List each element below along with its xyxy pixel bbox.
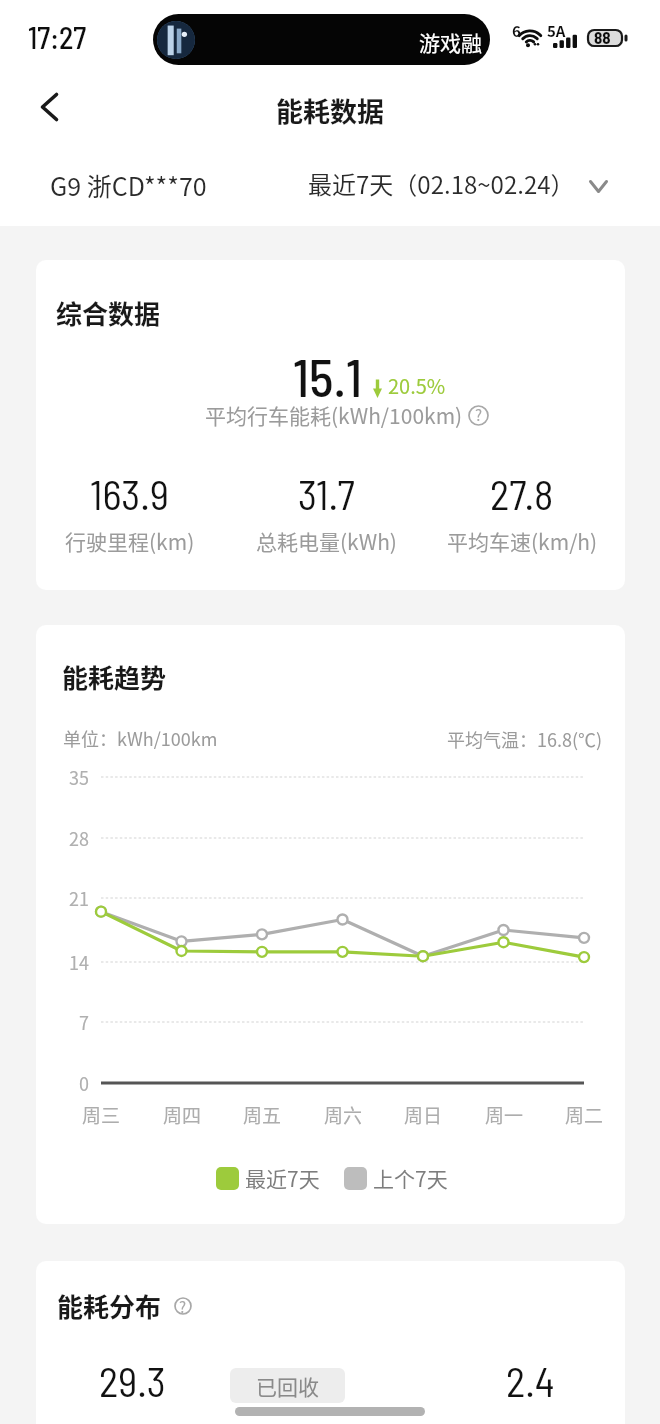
staticText: 27.8	[490, 469, 554, 518]
staticText: 游戏融	[419, 27, 482, 57]
staticText: 21	[69, 885, 89, 911]
staticText: 单位：kWh/100km	[63, 725, 218, 751]
staticText: 35	[69, 764, 89, 790]
button[interactable]: G9 浙CD***70	[50, 167, 207, 203]
staticText: 周二	[565, 1101, 604, 1129]
staticText: 5A	[547, 20, 566, 42]
staticText: 6	[512, 20, 521, 42]
staticText: 28	[69, 825, 89, 851]
staticText: 31.7	[298, 469, 355, 518]
staticText: 上个7天	[373, 1163, 448, 1193]
staticText: 20.5%	[388, 371, 446, 400]
staticText: 能耗数据	[276, 91, 384, 130]
staticText: 能耗趋势	[62, 658, 167, 696]
staticText: 平均气温：16.8(℃)	[447, 726, 603, 752]
staticText: 最近7天（02.18~02.24）	[308, 166, 575, 201]
staticText: 17:27	[28, 19, 87, 55]
staticText: 周三	[82, 1101, 121, 1129]
staticText: ?	[475, 404, 483, 425]
staticText: 15.1	[293, 345, 363, 407]
staticText: 0	[79, 1070, 89, 1096]
staticText: 总耗电量(kWh)	[256, 526, 397, 556]
button[interactable]: Back	[21, 78, 78, 135]
staticText: 周日	[404, 1101, 443, 1129]
staticText: 最近7天	[245, 1163, 320, 1193]
staticText: 已回收	[256, 1371, 319, 1401]
staticText: 周一	[485, 1101, 524, 1129]
staticText: 周六	[324, 1101, 363, 1129]
staticText: 周五	[243, 1101, 282, 1129]
staticText: 平均行车能耗(kWh/100km)	[205, 400, 463, 430]
staticText: 7	[79, 1009, 89, 1035]
staticText: 能耗分布	[57, 1287, 162, 1325]
button[interactable]: 最近7天（02.18~02.24）	[308, 166, 608, 201]
staticText: 29.3	[99, 1356, 166, 1405]
staticText: 163.9	[90, 469, 169, 518]
staticText: 行驶里程(km)	[65, 526, 195, 556]
staticText: ?	[179, 1296, 187, 1314]
staticText: 平均车速(km/h)	[447, 526, 598, 556]
staticText: 综合数据	[56, 294, 161, 332]
staticText: 2.4	[506, 1356, 555, 1405]
staticText: 88	[594, 27, 611, 45]
staticText: 周四	[163, 1101, 202, 1129]
staticText: 14	[69, 949, 89, 975]
